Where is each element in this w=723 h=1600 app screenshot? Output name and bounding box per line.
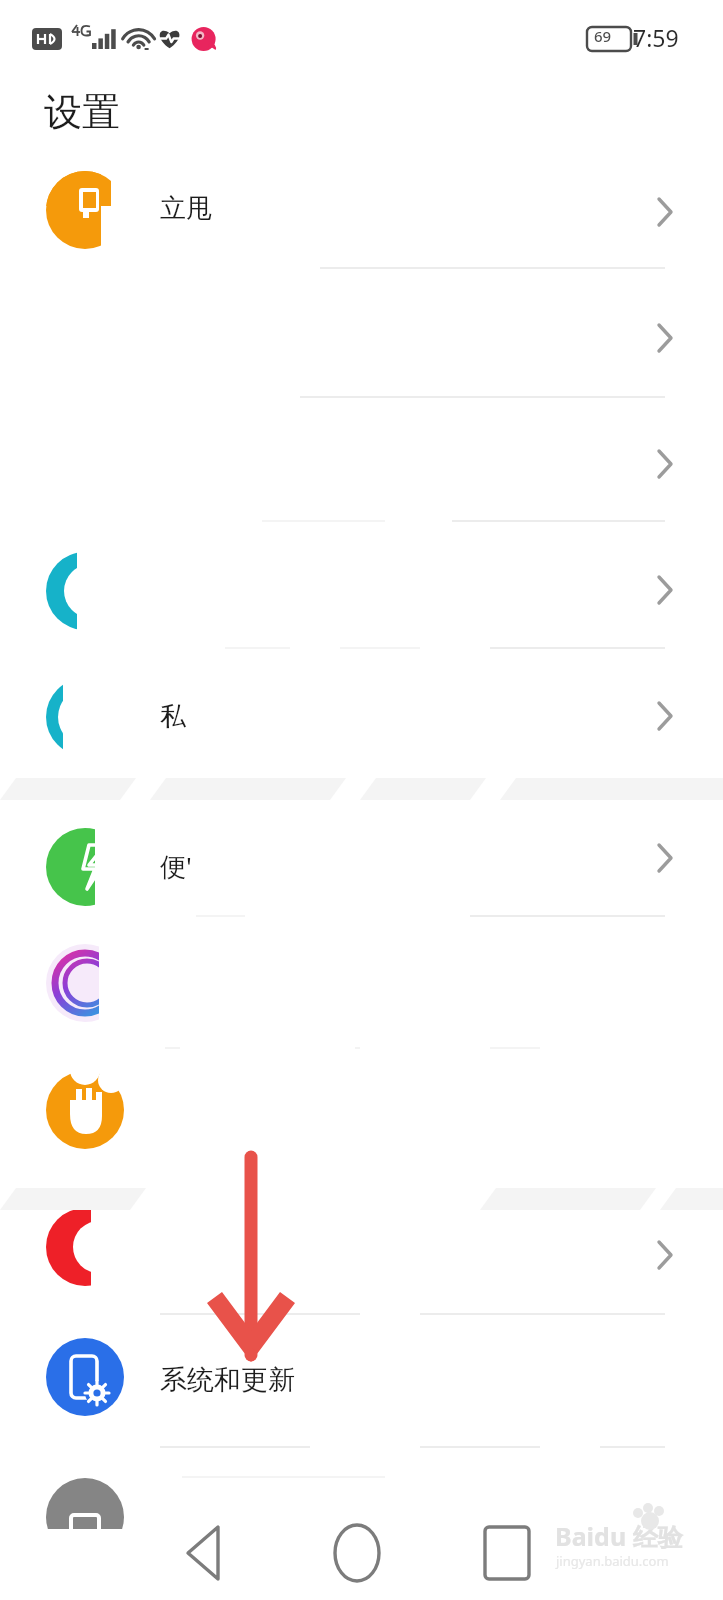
button[interactable] <box>0 1049 723 1171</box>
button[interactable] <box>0 401 723 523</box>
button[interactable]: 私 <box>0 656 723 778</box>
staticText: 69 <box>594 26 612 46</box>
staticText: 立甩 <box>160 192 212 225</box>
button[interactable]: Home <box>310 1518 414 1588</box>
button[interactable] <box>0 275 723 397</box>
button[interactable]: Recent apps <box>455 1518 559 1588</box>
staticText: Baidu 经验 <box>555 1519 683 1553</box>
button[interactable] <box>0 1186 723 1308</box>
button[interactable]: 系统和更新 <box>0 1316 723 1438</box>
button[interactable]: 立甩 <box>0 149 723 271</box>
button[interactable]: Back <box>150 1518 254 1588</box>
button[interactable] <box>0 1456 723 1578</box>
staticText: jingyan.baidu.com <box>556 1552 669 1570</box>
staticText: 系统和更新 <box>160 1363 295 1397</box>
staticText: 私 <box>160 700 186 733</box>
button[interactable] <box>0 922 723 1044</box>
staticText: 设置 <box>44 88 120 136</box>
staticText: 7:59 <box>633 22 679 53</box>
button[interactable]: 便' <box>0 806 723 928</box>
staticText: 便' <box>160 848 192 884</box>
button[interactable] <box>0 530 723 652</box>
